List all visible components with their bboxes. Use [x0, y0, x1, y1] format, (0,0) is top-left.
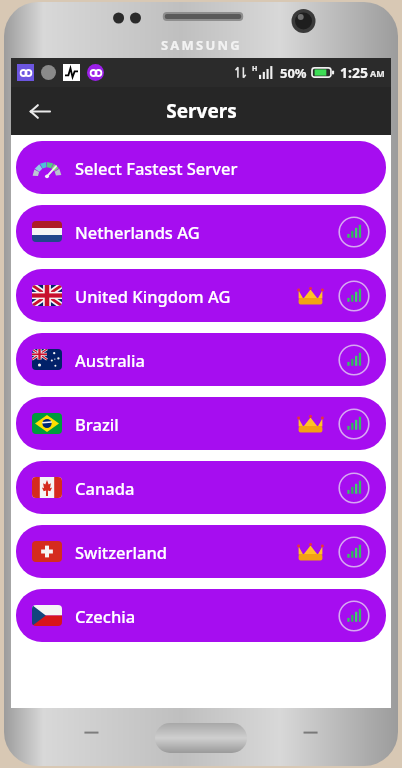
button[interactable]: Czechia — [16, 589, 386, 642]
button[interactable]: Australia — [16, 333, 386, 386]
button[interactable]: Switzerland — [16, 525, 386, 578]
staticText: Canada — [75, 477, 135, 499]
button[interactable]: United Kingdom AG — [16, 269, 386, 322]
other: Signal strength — [338, 536, 370, 568]
other: Signal strength — [338, 408, 370, 440]
other: Signal strength — [338, 216, 370, 248]
staticText: Select Fastest Server — [75, 157, 238, 179]
button[interactable]: Select Fastest Server — [16, 141, 386, 194]
other: Signal strength — [338, 344, 370, 376]
other: Signal strength — [338, 472, 370, 504]
staticText: Brazil — [75, 413, 119, 435]
staticText: Servers — [166, 98, 237, 124]
staticText: Czechia — [75, 605, 136, 627]
button[interactable]: Back — [17, 89, 61, 133]
staticText: United Kingdom AG — [75, 285, 231, 307]
other: Signal strength — [338, 280, 370, 312]
button[interactable]: Netherlands AG — [16, 205, 386, 258]
staticText: H — [252, 64, 258, 74]
staticText: 1:25 — [340, 63, 368, 82]
staticText: 50% — [280, 64, 307, 82]
button[interactable]: Home — [155, 723, 247, 753]
staticText: Netherlands AG — [75, 221, 200, 243]
staticText: SAMSUNG — [161, 36, 242, 54]
button[interactable]: Canada — [16, 461, 386, 514]
other: Signal strength — [338, 600, 370, 632]
staticText: Switzerland — [75, 541, 167, 563]
staticText: AM — [370, 67, 385, 79]
staticText: Australia — [75, 349, 145, 371]
button[interactable]: Brazil — [16, 397, 386, 450]
